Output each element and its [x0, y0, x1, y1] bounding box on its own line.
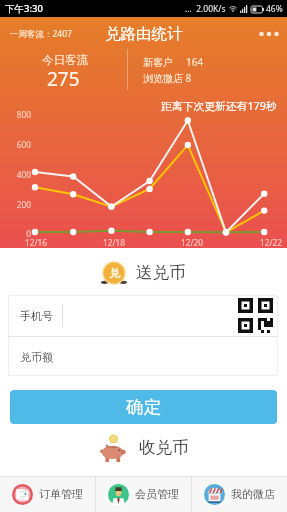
staticText: 今日客流 — [42, 53, 88, 67]
button[interactable]: 订单管理 — [0, 476, 95, 512]
staticText: 会员管理 — [135, 487, 179, 501]
button[interactable]: 手机号 — [8, 295, 278, 336]
button[interactable]: 兑币额 — [8, 337, 278, 376]
staticText: 275 — [47, 66, 80, 92]
staticText: 一周客流：2407 — [10, 28, 72, 40]
staticText: 0 — [0, 228, 31, 239]
staticText: 兑币额 — [20, 350, 53, 364]
button[interactable]: 兑 — [0, 259, 287, 286]
button[interactable]: 会员管理 — [96, 476, 191, 512]
staticText: 兑路由统计 — [105, 24, 183, 44]
staticText: 送兑币 — [136, 262, 186, 283]
staticText: 确定 — [126, 396, 161, 418]
staticText: 800 — [0, 109, 31, 120]
staticText: 手机号 — [20, 309, 53, 323]
staticText: … 2.00K/s — [185, 3, 226, 15]
staticText: 浏览微店 8 — [143, 71, 192, 85]
staticText: 12/16 — [20, 237, 52, 248]
staticText: 12/20 — [176, 237, 208, 248]
staticText: 兑 — [109, 266, 120, 280]
button[interactable]: 我的微店 — [192, 476, 287, 512]
staticText: 收兑币 — [139, 437, 189, 458]
staticText: 新客户 164 — [143, 55, 204, 69]
staticText: 我的微店 — [231, 487, 275, 501]
staticText: 600 — [0, 139, 31, 150]
staticText: 400 — [0, 169, 31, 180]
staticText: 距离下次更新还有179秒 — [161, 98, 277, 113]
staticText: 200 — [0, 199, 31, 210]
staticText: 下午3:30 — [5, 2, 43, 15]
staticText: 12/18 — [98, 237, 130, 248]
staticText: 订单管理 — [39, 487, 83, 501]
staticText: 12/22 — [255, 237, 287, 248]
button[interactable]: 收兑币 — [0, 433, 287, 462]
button[interactable]: 确定 — [10, 390, 277, 424]
button[interactable]: 扫码 — [236, 295, 275, 336]
staticText: 46% — [266, 3, 283, 15]
button[interactable]: 更多 — [251, 17, 287, 50]
